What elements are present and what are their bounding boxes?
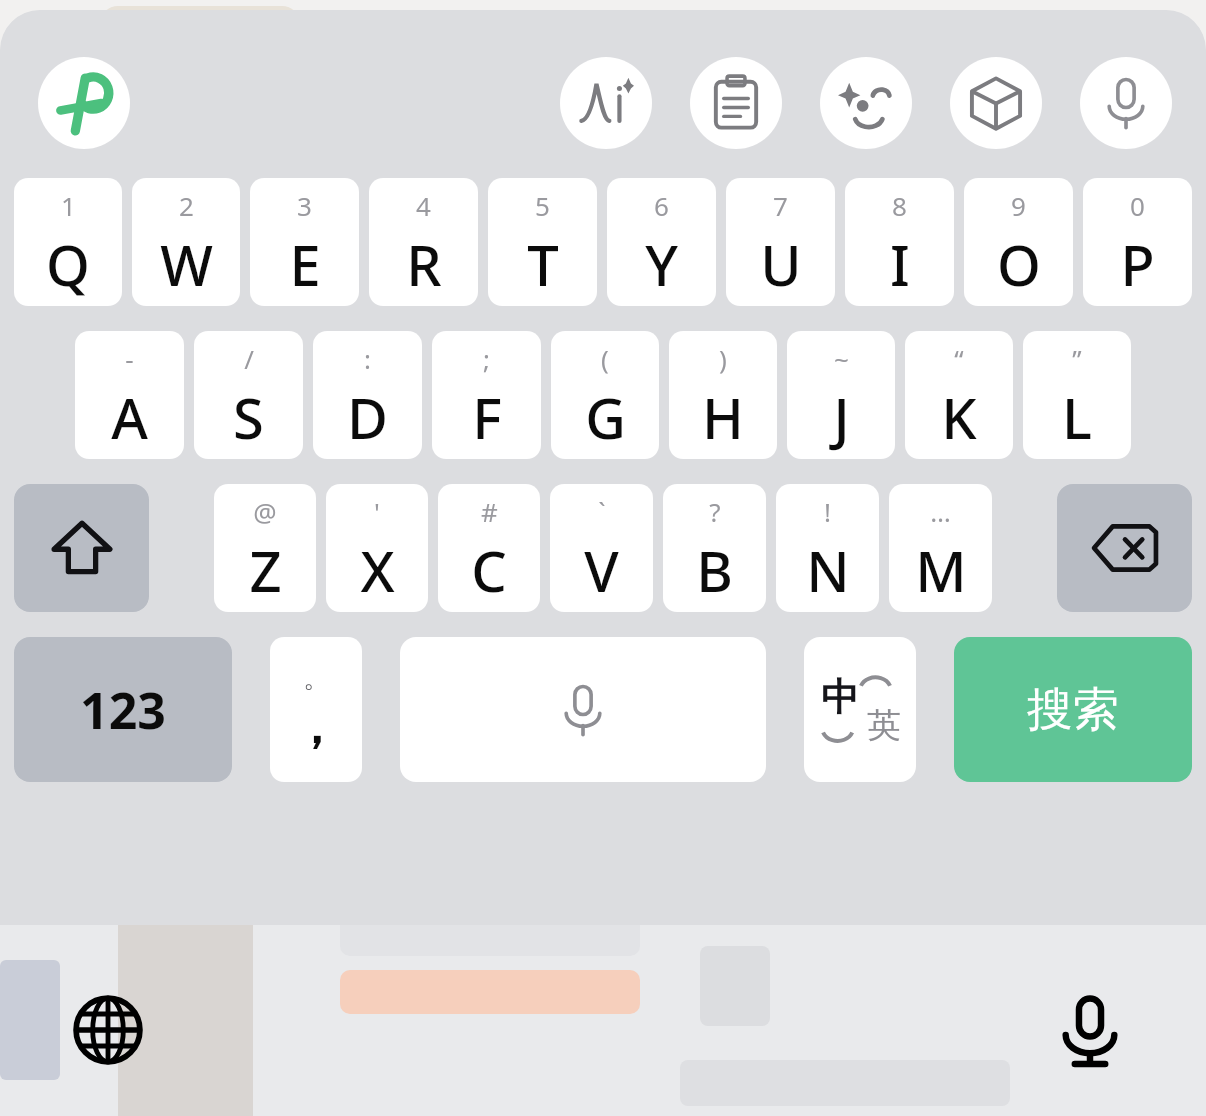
button[interactable]: - (75, 331, 184, 459)
button[interactable]: Comma (270, 637, 362, 782)
staticText: 3 (297, 188, 312, 223)
staticText: Q (46, 226, 90, 302)
staticText: P (1120, 226, 1155, 302)
button[interactable]: 0 (1083, 178, 1192, 306)
button[interactable]: 6 (607, 178, 716, 306)
staticText: 9 (1011, 188, 1026, 223)
staticText: ~ (834, 341, 849, 376)
button[interactable]: … (889, 484, 992, 612)
button[interactable]: ` (550, 484, 653, 612)
button[interactable]: Emoji (820, 57, 912, 149)
button[interactable]: 3 (250, 178, 359, 306)
staticText: X (360, 532, 395, 608)
button[interactable]: Voice (1080, 57, 1172, 149)
staticText: ? (709, 494, 721, 529)
staticText: K (941, 379, 977, 455)
button[interactable]: 8 (845, 178, 954, 306)
staticText: M (915, 532, 967, 608)
staticText: S (233, 379, 264, 455)
button[interactable]: Voice input (1052, 994, 1128, 1070)
staticText: … (930, 494, 951, 529)
button[interactable]: ! (776, 484, 879, 612)
staticText: 英 (867, 704, 901, 747)
staticText: W (160, 226, 213, 302)
staticText: J (833, 379, 850, 455)
button[interactable]: 4 (369, 178, 478, 306)
staticText: # (481, 494, 498, 529)
button[interactable]: / (194, 331, 303, 459)
button[interactable]: ; (432, 331, 541, 459)
button[interactable]: 9 (964, 178, 1073, 306)
staticText: ! (824, 494, 831, 529)
button[interactable]: ? (663, 484, 766, 612)
staticText: V (584, 532, 619, 608)
staticText: 2 (179, 188, 194, 223)
button[interactable]: ( (551, 331, 659, 459)
button[interactable]: Sticker (950, 57, 1042, 149)
staticText: U (760, 226, 802, 302)
staticText: 中 (821, 673, 859, 721)
staticText: ” (1072, 341, 1082, 376)
staticText: E (289, 226, 321, 302)
staticText: T (527, 226, 559, 302)
staticText: ; (483, 341, 490, 376)
staticText: 7 (773, 188, 788, 223)
staticText: C (471, 532, 507, 608)
button[interactable]: “ (905, 331, 1013, 459)
staticText: ` (598, 494, 606, 529)
button[interactable]: Text style (560, 57, 652, 149)
staticText: L (1062, 379, 1092, 455)
staticText: Z (249, 532, 282, 608)
button[interactable]: @ (214, 484, 316, 612)
button[interactable]: 123 (14, 637, 232, 782)
button[interactable]: Chinese English toggle (804, 637, 916, 782)
staticText: N (806, 532, 850, 608)
button[interactable]: 5 (488, 178, 597, 306)
button[interactable]: 2 (132, 178, 240, 306)
staticText: 。 (303, 662, 329, 695)
staticText: ， (293, 699, 339, 757)
button[interactable]: 搜索 (954, 637, 1192, 782)
button[interactable]: 1 (14, 178, 122, 306)
staticText: 5 (535, 188, 550, 223)
button[interactable]: ~ (787, 331, 895, 459)
staticText: 6 (654, 188, 669, 223)
staticText: D (347, 379, 388, 455)
staticText: A (111, 379, 148, 455)
staticText: Y (645, 226, 678, 302)
staticText: 搜索 (1027, 681, 1119, 739)
staticText: 8 (892, 188, 907, 223)
button[interactable]: Language (70, 992, 146, 1068)
staticText: : (364, 341, 371, 376)
button[interactable]: Keyboard app (38, 57, 130, 149)
button[interactable]: ” (1023, 331, 1131, 459)
button[interactable]: ' (326, 484, 428, 612)
button[interactable]: Backspace (1057, 484, 1192, 612)
staticText: O (997, 226, 1041, 302)
button[interactable]: # (438, 484, 540, 612)
staticText: F (472, 379, 502, 455)
staticText: 0 (1130, 188, 1145, 223)
staticText: “ (954, 341, 964, 376)
staticText: 1 (61, 188, 76, 223)
button[interactable]: Clipboard (690, 57, 782, 149)
button[interactable]: ) (669, 331, 777, 459)
staticText: ' (374, 494, 380, 529)
staticText: - (125, 341, 134, 376)
staticText: 123 (80, 676, 166, 744)
staticText: H (702, 379, 744, 455)
staticText: I (890, 226, 910, 302)
button[interactable]: : (313, 331, 422, 459)
staticText: @ (253, 494, 277, 529)
staticText: / (244, 341, 254, 376)
staticText: 4 (416, 188, 431, 223)
staticText: B (696, 532, 733, 608)
staticText: ( (601, 341, 609, 376)
button[interactable]: Space (400, 637, 766, 782)
button[interactable]: 7 (726, 178, 835, 306)
button[interactable]: Shift (14, 484, 149, 612)
staticText: ) (719, 341, 727, 376)
staticText: G (585, 379, 626, 455)
staticText: R (406, 226, 442, 302)
